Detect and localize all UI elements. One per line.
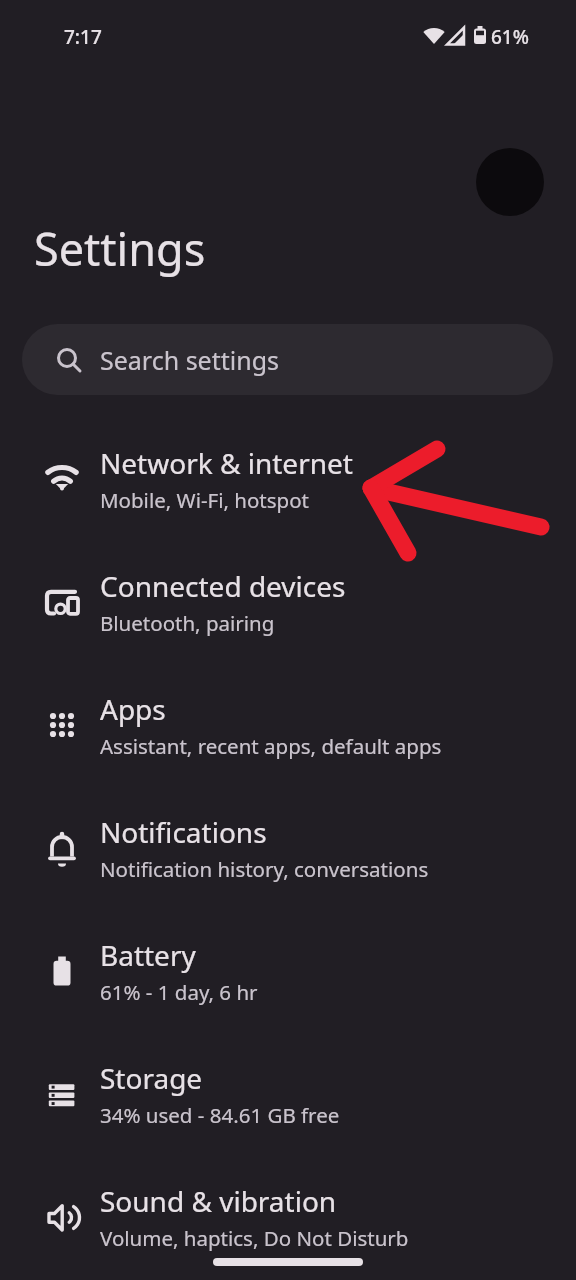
staticText: Mobile, Wi-Fi, hotspot xyxy=(100,486,309,514)
staticText: Battery xyxy=(100,936,196,974)
button[interactable]: Notifications xyxy=(0,786,576,909)
button[interactable] xyxy=(476,148,544,216)
staticText: Notification history, conversations xyxy=(100,855,429,883)
staticText: 61% - 1 day, 6 hr xyxy=(100,978,258,1006)
staticText: Storage xyxy=(100,1059,203,1097)
staticText: 7:17 xyxy=(64,24,102,50)
staticText: Sound & vibration xyxy=(100,1182,337,1220)
button[interactable]: Apps xyxy=(0,663,576,786)
staticText: Apps xyxy=(100,690,166,728)
button[interactable]: Search settings xyxy=(22,324,553,395)
staticText: 34% used - 84.61 GB free xyxy=(100,1101,340,1129)
staticText: Bluetooth, pairing xyxy=(100,609,275,637)
button[interactable]: Battery xyxy=(0,909,576,1032)
staticText: Connected devices xyxy=(100,567,346,605)
staticText: 61% xyxy=(491,24,529,50)
staticText: Network & internet xyxy=(100,444,353,482)
button[interactable]: Connected devices xyxy=(0,540,576,663)
button[interactable]: Storage xyxy=(0,1032,576,1155)
staticText: Settings xyxy=(34,218,206,279)
staticText: Search settings xyxy=(100,343,280,377)
staticText: Notifications xyxy=(100,813,267,851)
staticText: Assistant, recent apps, default apps xyxy=(100,732,442,760)
button[interactable]: Network & internet xyxy=(0,417,576,540)
button[interactable]: Sound & vibration xyxy=(0,1155,576,1278)
staticText: Volume, haptics, Do Not Disturb xyxy=(100,1224,409,1252)
